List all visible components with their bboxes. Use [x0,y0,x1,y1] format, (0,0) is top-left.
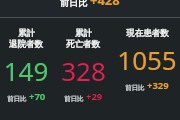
staticText: +428 [90,0,120,8]
staticText: 現在患者数 [126,28,169,39]
staticText: 328 [61,53,106,88]
staticText: 前日比 [64,95,84,103]
button[interactable]: 累計 [58,28,108,103]
button[interactable]: 現在患者数 [111,28,180,92]
staticText: 退院者数 [9,39,43,50]
staticText: +329 [147,79,169,92]
staticText: 累計 [75,28,92,39]
staticText: 死亡者数 [66,39,100,50]
button[interactable]: 累計 [0,28,55,103]
staticText: 累計 [18,28,35,39]
staticText: 1494 [0,53,54,88]
staticText: 前日比 [7,95,27,103]
staticText: 前日比 [60,0,87,8]
staticText: 前日比 [125,84,145,92]
staticText: +29 [86,90,103,103]
staticText: 10552 [112,42,180,77]
button[interactable]: 前日比 +428 [0,0,180,17]
staticText: +70 [29,90,46,103]
